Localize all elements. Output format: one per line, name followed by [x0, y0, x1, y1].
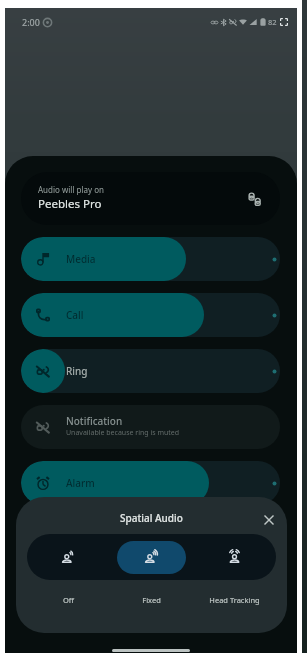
- button[interactable]: Close: [260, 511, 278, 529]
- staticText: Notification: [66, 414, 123, 428]
- button[interactable]: Notification: [21, 405, 280, 449]
- staticText: Audio will play on: [38, 184, 104, 195]
- button[interactable]: Head Tracking: [193, 534, 276, 580]
- button[interactable]: Media: [21, 237, 280, 281]
- button[interactable]: Audio will play on: [21, 172, 280, 225]
- staticText: Spatial Audio: [120, 511, 183, 525]
- button[interactable]: Call: [21, 293, 280, 337]
- button[interactable]: Alarm: [21, 461, 280, 505]
- staticText: Alarm: [66, 476, 95, 490]
- button[interactable]: Off: [27, 534, 110, 580]
- staticText: Call: [66, 308, 84, 322]
- staticText: Peebles Pro: [38, 196, 102, 212]
- staticText: Ring: [66, 364, 88, 378]
- staticText: Unavailable because ring is muted: [66, 428, 180, 438]
- button[interactable]: Ring: [21, 349, 280, 393]
- staticText: Head Tracking: [193, 595, 276, 605]
- staticText: Media: [66, 252, 96, 266]
- staticText: Off: [27, 595, 110, 605]
- staticText: 2:00: [22, 16, 40, 28]
- staticText: 82: [268, 17, 277, 27]
- button[interactable]: Fixed: [110, 534, 193, 580]
- staticText: Fixed: [110, 595, 193, 605]
